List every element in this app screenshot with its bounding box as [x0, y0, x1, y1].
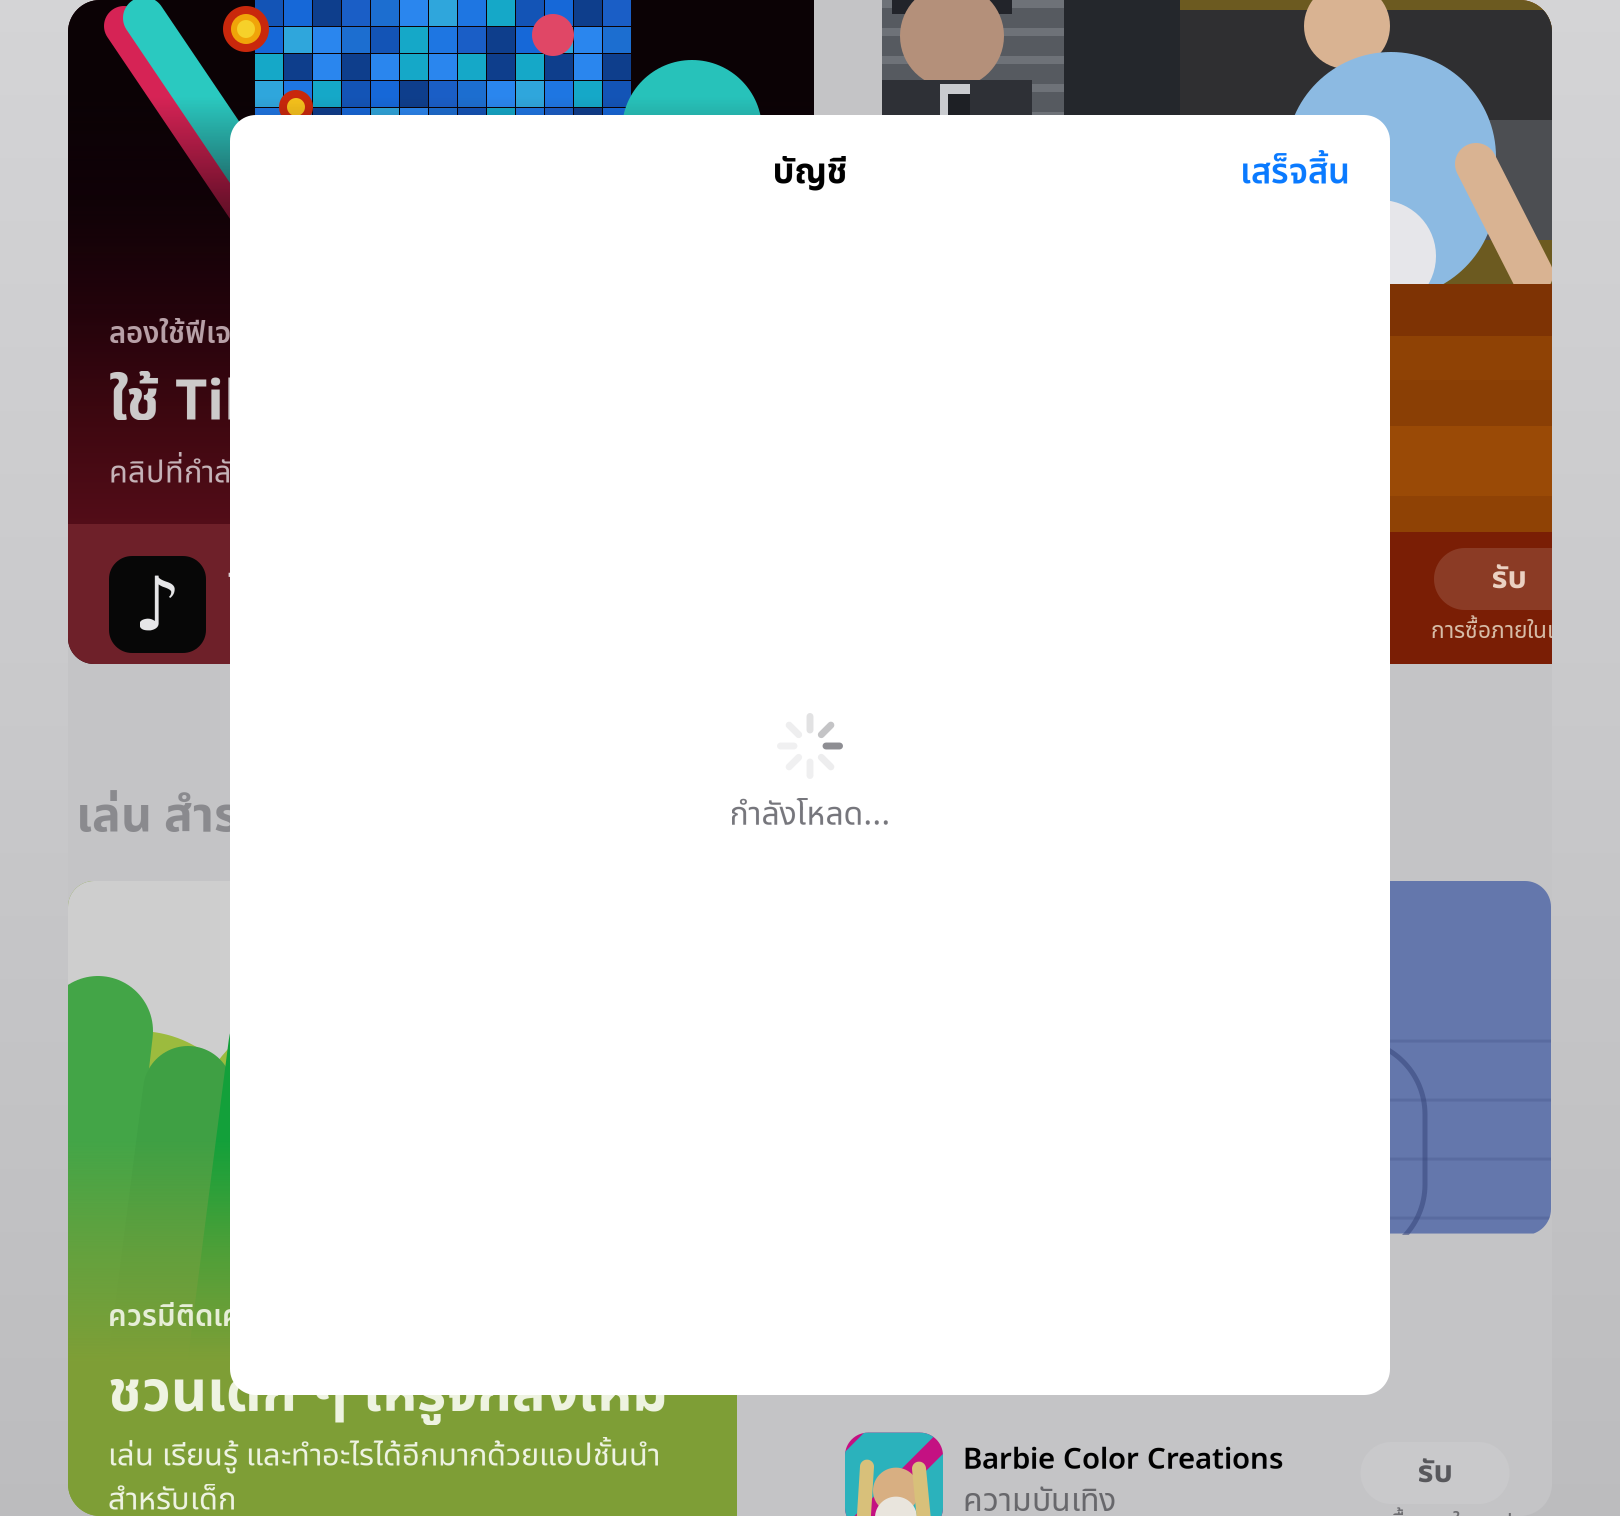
- staticText: เล่น สำรวจ เรียนรู้: [76, 780, 430, 852]
- staticText: คลิปที่กำลังมาแรง: [109, 450, 327, 496]
- staticText: รับ: [1491, 556, 1526, 602]
- button[interactable]: เสร็จสิ้น: [1228, 137, 1362, 209]
- staticText: ♪: [133, 562, 181, 647]
- staticText: Barbie Color Creations: [963, 1438, 1283, 1477]
- staticText: TikTok: [228, 561, 346, 610]
- staticText: บัญชี: [772, 147, 847, 199]
- staticText: สำหรับเด็ก: [108, 1477, 236, 1516]
- staticText: การซื้อภายในแอป: [1431, 614, 1587, 648]
- staticText: ควรมีติดเครื่อง: [108, 1295, 289, 1339]
- staticText: บันเทิง: [228, 610, 295, 648]
- button[interactable]: Barbie Color Creations: [845, 1423, 1513, 1516]
- staticText: เล่น เรียนรู้ และทำอะไรได้อีกมากด้วยแอปช…: [108, 1433, 660, 1479]
- staticText: การซื้อภายในแอป: [1357, 1506, 1513, 1516]
- staticText: ลองใช้ฟีเจอร์ใหม่ใน TikTok: [109, 312, 437, 356]
- staticText: กำลังโหลด...: [729, 791, 890, 839]
- button[interactable]: รับ: [1434, 548, 1584, 610]
- staticText: เสร็จสิ้น: [1240, 147, 1350, 199]
- staticText: รับ: [1417, 1450, 1452, 1496]
- staticText: ใช้ TikTok ได้ดีขึ้น: [109, 360, 533, 445]
- staticText: ชวนเด็ก ๆ ให้รู้จักสิ่งใหม่: [108, 1351, 668, 1436]
- staticText: ความบันเทิง: [963, 1477, 1116, 1516]
